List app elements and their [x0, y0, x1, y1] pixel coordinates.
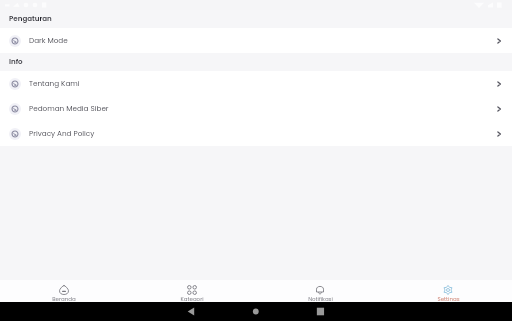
staticText: Notifikasi — [308, 295, 333, 301]
staticText: Pedoman Media Siber — [29, 103, 109, 113]
button[interactable]: Beranda — [0, 280, 128, 302]
staticText: Tentang Kami — [29, 78, 80, 88]
staticText: Pengaturan — [9, 14, 52, 24]
staticText: Beranda — [52, 295, 76, 301]
button[interactable]: Pedoman Media Siber — [0, 96, 512, 121]
button[interactable]: Notifikasi — [256, 280, 384, 302]
staticText: Info — [9, 57, 23, 67]
button[interactable]: Privacy And Policy — [0, 121, 512, 146]
staticText: Privacy And Policy — [29, 128, 95, 138]
button[interactable]: Kategori — [128, 280, 256, 302]
staticText: Settings — [437, 295, 460, 301]
button[interactable]: Tentang Kami — [0, 71, 512, 96]
staticText: Dark Mode — [29, 35, 68, 45]
button[interactable]: Settings — [384, 280, 512, 302]
button[interactable]: Dark Mode — [0, 28, 512, 53]
staticText: Kategori — [180, 295, 204, 301]
